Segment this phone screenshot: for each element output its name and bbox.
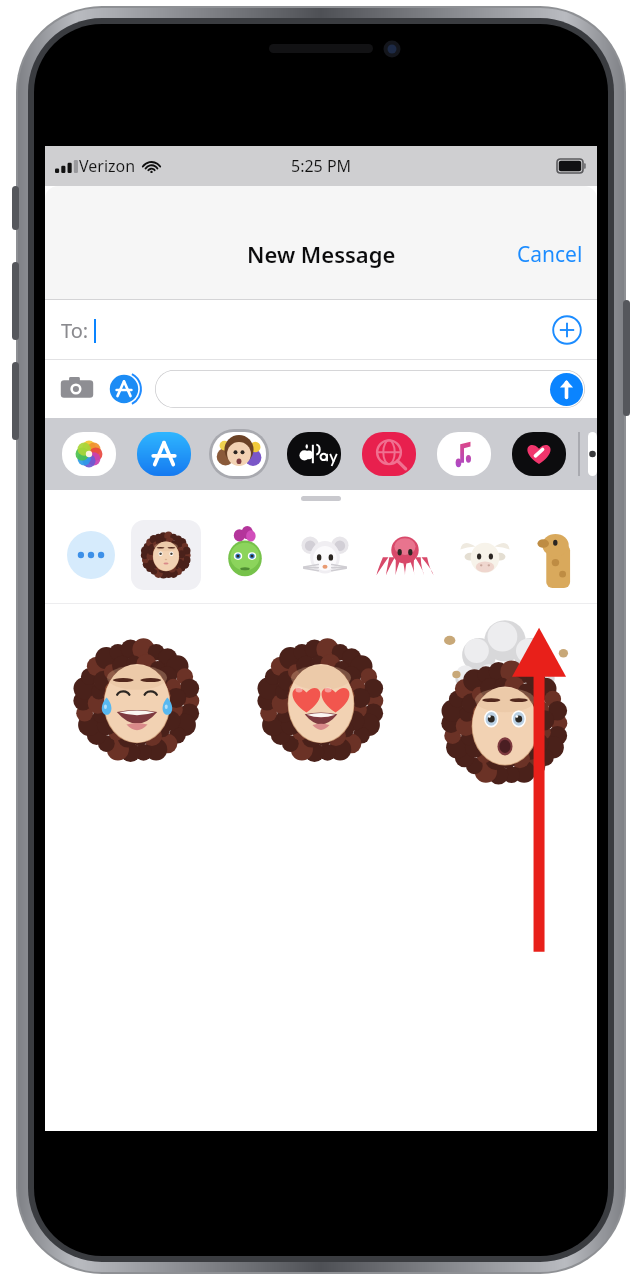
button[interactable]: Heart eyes Memoji: [229, 612, 413, 788]
button[interactable]: App Store: [106, 371, 142, 407]
button[interactable]: My Memoji: [131, 520, 201, 590]
button[interactable]: iMessage app: [134, 428, 194, 480]
button[interactable]: Drag handle: [301, 496, 341, 501]
button[interactable]: Cancel: [503, 232, 597, 277]
button[interactable]: Cow Memoji: [454, 524, 516, 586]
staticText: 5:25 PM: [291, 155, 352, 177]
button[interactable]: Add contact: [552, 315, 582, 345]
button[interactable]: Alien Memoji: [214, 524, 276, 586]
button[interactable]: Send: [155, 370, 585, 408]
button[interactable]: More stickers: [65, 529, 117, 581]
button[interactable]: iMessage app: [359, 428, 419, 480]
button[interactable]: Camera: [59, 371, 95, 407]
staticText: Verizon: [79, 155, 136, 177]
button[interactable]: Send: [550, 373, 583, 406]
button[interactable]: Mind blown Memoji: [413, 612, 597, 788]
button[interactable]: iMessage app: [434, 428, 494, 480]
button[interactable]: iMessage app: [588, 428, 597, 480]
button[interactable]: iMessage app: [209, 428, 269, 480]
button[interactable]: iMessage app: [59, 428, 119, 480]
button[interactable]: iMessage app: [509, 428, 569, 480]
staticText: New Message: [247, 239, 396, 269]
button[interactable]: Crying laughing Memoji: [45, 612, 229, 788]
staticText: Cancel: [517, 240, 583, 269]
button[interactable]: Giraffe Memoji: [532, 522, 566, 588]
staticText: To:: [61, 317, 89, 344]
button[interactable]: Octopus Memoji: [374, 524, 436, 586]
button[interactable]: Mouse Memoji: [294, 524, 356, 586]
button[interactable]: iMessage app: [284, 428, 344, 480]
